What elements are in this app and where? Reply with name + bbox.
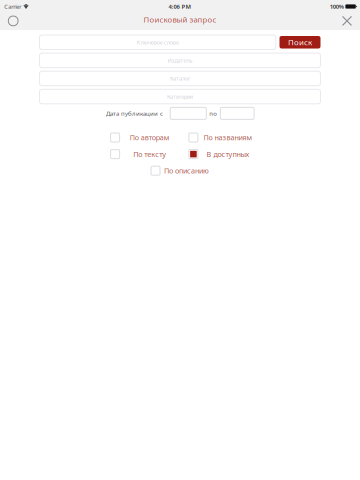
staticText: 4:06 PM [168, 2, 191, 10]
button[interactable]: Reload [0, 13, 26, 30]
button[interactable]: Каталог [39, 71, 320, 86]
button[interactable]: Издатель [39, 53, 320, 68]
staticText: Поиск [288, 37, 312, 48]
button[interactable]: В доступных [189, 149, 267, 159]
button[interactable]: Поиск [279, 36, 320, 48]
button[interactable]: По описанию [151, 166, 209, 176]
staticText: 100% [330, 2, 344, 10]
staticText: Дата публикации с [106, 109, 163, 117]
button[interactable]: По названиям [189, 132, 267, 142]
button[interactable]: Категория [39, 89, 320, 104]
button[interactable]: По авторам [111, 132, 189, 142]
staticText: по [209, 109, 217, 117]
button[interactable]: Date [170, 107, 206, 119]
staticText: В доступных [206, 149, 249, 159]
staticText: По описанию [164, 166, 209, 176]
staticText: Ключевое слово [137, 38, 179, 46]
staticText: Каталог [170, 75, 190, 82]
staticText: По названиям [203, 133, 252, 142]
staticText: По авторам [130, 133, 170, 142]
button[interactable]: По тексту [111, 149, 189, 159]
button[interactable]: Close [334, 13, 360, 30]
button[interactable]: Ключевое слово [39, 35, 276, 49]
staticText: Поисковый запрос [144, 14, 217, 25]
staticText: Carrier [4, 3, 21, 10]
staticText: По тексту [133, 149, 166, 159]
staticText: Категория [167, 93, 193, 100]
button[interactable]: Date [220, 107, 254, 119]
staticText: Издатель [167, 56, 192, 64]
